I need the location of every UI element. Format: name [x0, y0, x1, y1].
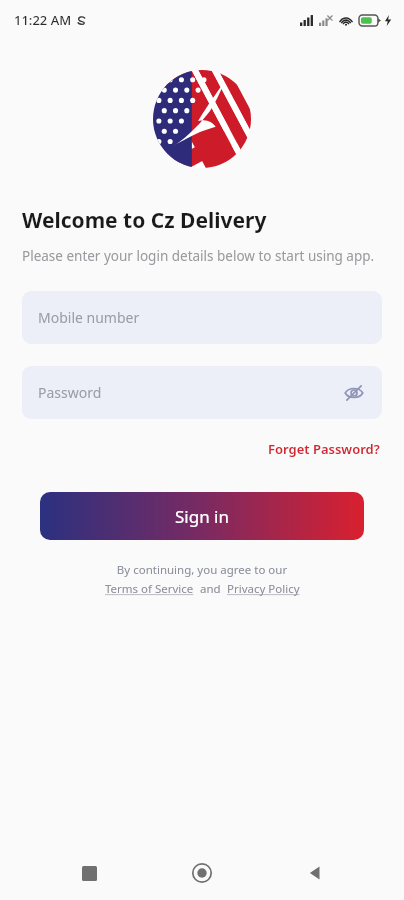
button[interactable]: Back [291, 849, 339, 897]
staticText: Sign in [175, 505, 229, 528]
staticText: Welcome to Cz Delivery [22, 206, 267, 235]
button[interactable]: Mobile number [22, 291, 382, 344]
staticText: Terms of Service [105, 581, 194, 597]
staticText: Mobile number [38, 308, 140, 327]
button[interactable]: Home [178, 849, 226, 897]
staticText: Forget Password? [268, 440, 380, 458]
button[interactable]: Recent apps [65, 849, 113, 897]
staticText: Privacy Policy [227, 581, 300, 597]
button[interactable]: Forget Password? [266, 437, 382, 461]
button[interactable]: Terms of Service [105, 581, 194, 597]
button[interactable]: Show password [340, 379, 368, 407]
button[interactable]: Sign in [40, 492, 364, 540]
staticText: and [194, 581, 227, 597]
staticText: Please enter your login details below to… [22, 247, 375, 265]
staticText: 11:22 AM [14, 11, 72, 29]
button[interactable]: Privacy Policy [227, 581, 300, 597]
button[interactable]: Password [22, 366, 382, 419]
staticText: Password [38, 383, 102, 402]
staticText: By continuing, you agree to our [0, 562, 404, 578]
